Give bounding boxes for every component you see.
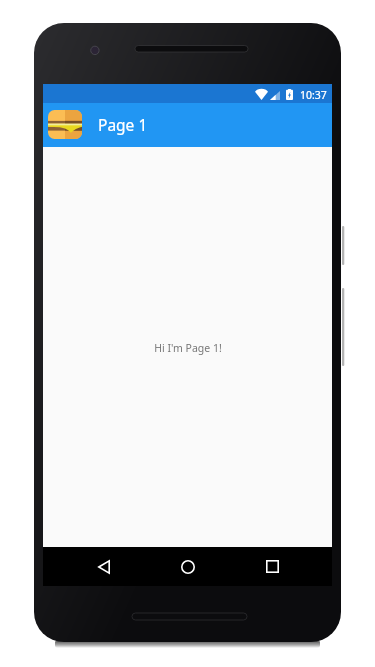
button[interactable]: Back	[80, 547, 128, 586]
staticText: Hi I'm Page 1!	[154, 341, 222, 355]
button[interactable]: Recents	[248, 547, 296, 586]
button[interactable]: App logo	[48, 110, 82, 139]
staticText: Page 1	[98, 114, 148, 135]
staticText: 10:37	[300, 88, 327, 102]
button[interactable]: Home	[164, 547, 212, 586]
